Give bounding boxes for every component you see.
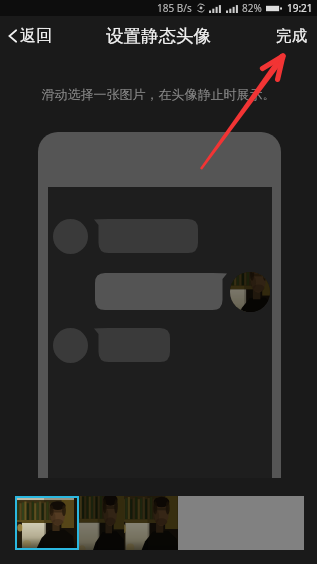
staticText: 设置静态头像 <box>106 25 211 47</box>
button[interactable]: Frame 3 <box>124 496 178 550</box>
button[interactable]: Frame 2 <box>79 496 124 550</box>
staticText: 完成 <box>276 26 307 46</box>
staticText: 返回 <box>20 26 52 46</box>
button[interactable]: 完成 <box>266 20 317 52</box>
staticText: 滑动选择一张图片，在头像静止时展示。 <box>0 86 317 102</box>
button[interactable]: Selected frame <box>17 498 77 548</box>
button[interactable]: 返回 <box>0 20 60 52</box>
staticText: 82% <box>242 1 262 15</box>
staticText: 19:21 <box>287 1 313 15</box>
staticText: 185 B/s <box>157 1 192 15</box>
